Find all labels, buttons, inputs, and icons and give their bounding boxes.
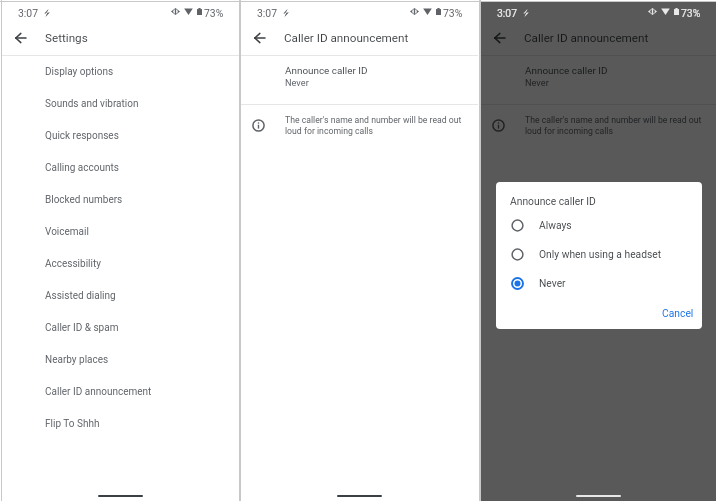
staticText: Announce caller ID [285,65,368,77]
button[interactable]: Cancel [654,303,702,323]
button[interactable]: Announce caller ID [481,56,716,104]
staticText: Caller ID announcement [45,386,152,398]
staticText: Nearby places [45,354,109,366]
button[interactable]: Sounds and vibration [2,88,239,120]
button[interactable]: Quick responses [2,120,239,152]
button[interactable]: Back [247,26,271,50]
staticText: Flip To Shhh [45,418,100,430]
staticText: Caller ID announcement [284,31,409,45]
staticText: Settings [45,31,88,45]
staticText: 73% [681,7,701,19]
staticText: Never [525,77,549,88]
staticText: Only when using a headset [539,248,662,260]
staticText: Calling accounts [45,162,119,174]
staticText: Always [539,219,572,231]
staticText: Blocked numbers [45,194,123,206]
button[interactable]: Accessibility [2,248,239,280]
staticText: 3:07 [257,7,278,19]
button[interactable]: Assisted dialing [2,280,239,312]
button[interactable]: Announce caller ID [241,56,478,104]
staticText: 73% [443,7,463,19]
staticText: Never [539,277,566,289]
staticText: Cancel [662,307,694,319]
button[interactable]: Flip To Shhh [2,408,239,440]
staticText: Sounds and vibration [45,98,139,110]
button[interactable]: Blocked numbers [2,184,239,216]
button[interactable]: Display options [2,56,239,88]
staticText: Never [285,77,309,88]
button[interactable]: Only when using a headset [496,241,702,267]
button[interactable]: Nearby places [2,344,239,376]
staticText: The caller's name and number will be rea… [285,115,462,136]
staticText: Announce caller ID [510,195,596,207]
button[interactable]: Back [487,26,511,50]
staticText: The caller's name and number will be rea… [525,115,702,136]
button[interactable]: Voicemail [2,216,239,248]
staticText: Caller ID announcement [524,31,649,45]
staticText: 73% [204,7,224,19]
button[interactable]: Caller ID announcement [2,376,239,408]
button[interactable]: Always [496,212,702,238]
button[interactable]: Caller ID & spam [2,312,239,344]
staticText: 3:07 [18,7,39,19]
staticText: Voicemail [45,226,89,238]
staticText: Assisted dialing [45,290,116,302]
staticText: Display options [45,66,114,78]
staticText: Caller ID & spam [45,322,119,334]
staticText: Accessibility [45,258,101,270]
staticText: 3:07 [497,7,518,19]
button[interactable]: Back [8,26,32,50]
staticText: Announce caller ID [525,65,608,77]
button[interactable]: Calling accounts [2,152,239,184]
button[interactable]: Never [496,270,702,296]
staticText: Quick responses [45,130,119,142]
